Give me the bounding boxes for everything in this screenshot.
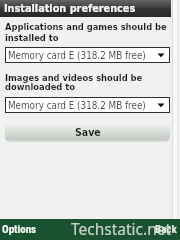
other: Open memory selection list	[157, 101, 165, 109]
button[interactable]: Back	[149, 223, 180, 236]
staticText: Techstatic.net	[71, 218, 172, 239]
staticText: Applications and games should be	[5, 21, 167, 32]
staticText: Images and videos should be	[5, 72, 143, 83]
staticText: Options	[2, 223, 37, 236]
button[interactable]: Memory card E (318.2 MB free)	[5, 97, 170, 113]
button[interactable]: Memory card E (318.2 MB free)	[5, 47, 170, 63]
button[interactable]: Installation preferences	[0, 0, 175, 17]
button[interactable]: Options	[0, 223, 43, 236]
staticText: installed to	[5, 32, 59, 43]
staticText: Back	[155, 223, 177, 236]
other: Open memory selection list	[157, 51, 165, 59]
staticText: Memory card E (318.2 MB free)	[8, 50, 146, 61]
staticText: downloaded to	[5, 81, 75, 92]
button[interactable]: Save	[5, 122, 170, 142]
staticText: Save	[75, 126, 101, 138]
staticText: Installation preferences	[4, 2, 136, 15]
staticText: Memory card E (318.2 MB free)	[8, 100, 146, 111]
